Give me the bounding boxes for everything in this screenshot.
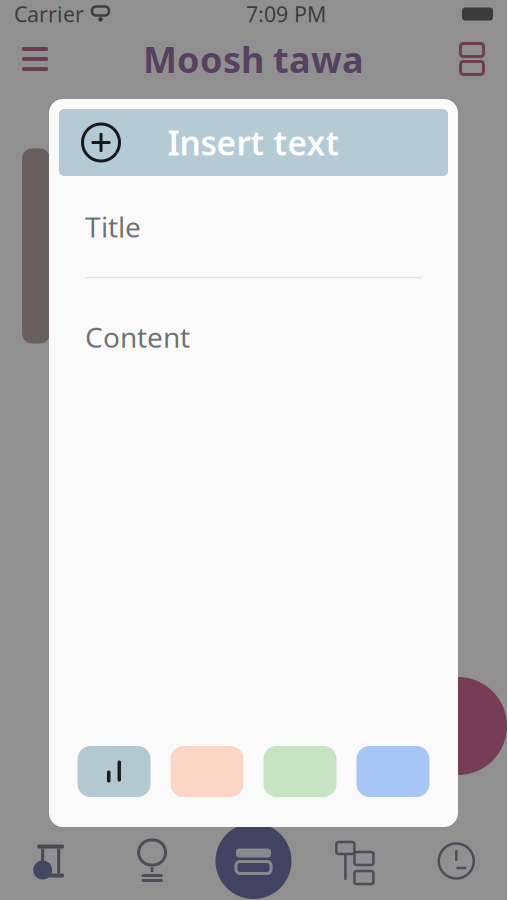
- button[interactable]: Insert text: [49, 99, 458, 176]
- staticText: Title: [85, 208, 141, 245]
- button[interactable]: Achievements: [101, 822, 203, 900]
- staticText: Carrier: [14, 0, 84, 28]
- button[interactable]: Add note: [203, 822, 304, 900]
- button[interactable]: Peach: [170, 746, 243, 797]
- staticText: Insert text: [167, 120, 339, 165]
- button[interactable]: Blue grey, selected: [77, 746, 150, 797]
- button[interactable]: Blue: [356, 746, 429, 797]
- button[interactable]: History: [406, 822, 507, 900]
- button[interactable]: Switch layout: [437, 32, 507, 86]
- button[interactable]: Timer: [0, 822, 101, 900]
- staticText: Moosh tawa: [143, 35, 364, 83]
- staticText: 7:09 PM: [246, 0, 326, 28]
- button[interactable]: Green: [263, 746, 336, 797]
- staticText: Content: [85, 318, 190, 355]
- button[interactable]: Structure: [304, 822, 406, 900]
- button[interactable]: Menu: [0, 32, 70, 86]
